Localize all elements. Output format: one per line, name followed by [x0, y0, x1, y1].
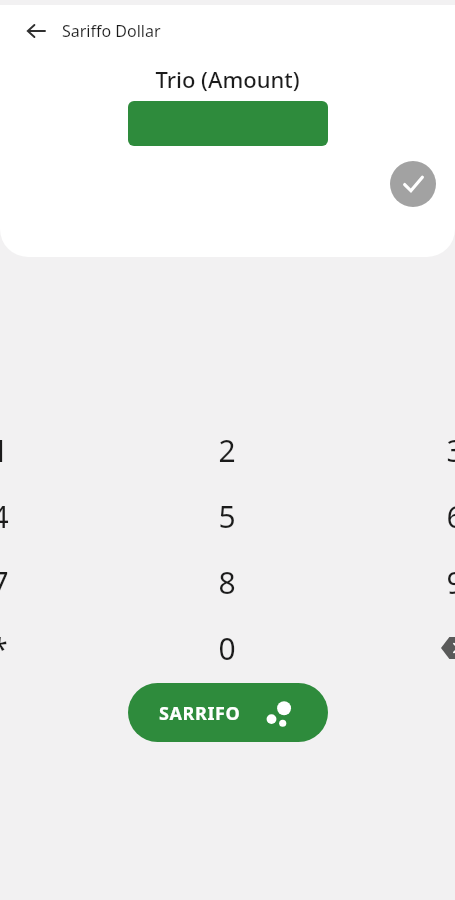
- button[interactable]: 6: [303, 483, 455, 549]
- staticText: Sariffo Dollar: [62, 20, 161, 42]
- button[interactable]: 3: [303, 417, 455, 483]
- button[interactable]: Back: [18, 13, 54, 49]
- button[interactable]: 8: [151, 549, 303, 615]
- button[interactable]: Amount field: [128, 101, 328, 146]
- button[interactable]: 0: [151, 615, 303, 681]
- staticText: 8: [218, 562, 236, 603]
- button[interactable]: 5: [151, 483, 303, 549]
- staticText: 7: [0, 562, 9, 603]
- button[interactable]: SARRIFO: [128, 683, 328, 742]
- staticText: SARRIFO: [159, 701, 241, 726]
- staticText: 4: [0, 496, 9, 537]
- button[interactable]: *: [0, 615, 151, 681]
- staticText: 6: [446, 496, 455, 537]
- staticText: 2: [218, 430, 236, 471]
- button[interactable]: 4: [0, 483, 151, 549]
- button[interactable]: 2: [151, 417, 303, 483]
- button[interactable]: Backspace: [303, 615, 455, 681]
- staticText: *: [0, 628, 8, 669]
- staticText: 0: [218, 628, 236, 669]
- staticText: 5: [218, 496, 236, 537]
- staticText: 1: [0, 430, 9, 471]
- staticText: 9: [446, 562, 455, 603]
- button[interactable]: 1: [0, 417, 151, 483]
- staticText: 3: [446, 430, 455, 471]
- button[interactable]: 7: [0, 549, 151, 615]
- button[interactable]: 9: [303, 549, 455, 615]
- staticText: Trio (Amount): [0, 64, 455, 94]
- button[interactable]: Confirm: [390, 161, 436, 207]
